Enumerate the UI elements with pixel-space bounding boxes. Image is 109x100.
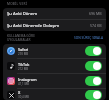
staticText: Şu Anki Dönemde Dolaşım xyxy=(7,23,90,29)
button[interactable]: X xyxy=(3,89,106,100)
staticText: X xyxy=(18,90,21,95)
staticText: 574 KB xyxy=(90,23,102,28)
staticText: 30,4 MB xyxy=(18,95,29,99)
button[interactable]: Toggle mobile data xyxy=(85,76,102,86)
button[interactable]: Instagram xyxy=(3,74,106,88)
button[interactable]: Toggle mobile data xyxy=(85,46,102,56)
staticText: Instagram xyxy=(18,77,37,82)
staticText: 696 MB xyxy=(89,11,102,16)
staticText: TikTok xyxy=(18,62,30,67)
staticText: 293 MB xyxy=(18,52,29,56)
button[interactable]: Şu Anki Dönem xyxy=(3,8,106,19)
staticText: Şu Anki Dönem xyxy=(7,11,89,17)
button[interactable]: SON SÜREÇ SIRALA xyxy=(73,36,103,40)
button[interactable]: Şu Anki Dönemde Dolaşım xyxy=(3,20,106,31)
staticText: 41,1 MB xyxy=(18,82,29,86)
staticText: SON SÜREÇ SIRALA xyxy=(73,36,103,40)
button[interactable]: Safari xyxy=(3,44,106,58)
staticText: MOBİL VERİ xyxy=(7,2,28,6)
staticText: 212 MB xyxy=(18,67,29,71)
staticText: KULLANIMA GÖRE xyxy=(7,34,35,38)
button[interactable]: Toggle mobile data xyxy=(85,61,102,71)
button[interactable]: Toggle mobile data xyxy=(85,90,102,100)
staticText: UYGULAMALAR xyxy=(7,38,31,42)
button[interactable]: TikTok xyxy=(3,59,106,73)
staticText: Safari xyxy=(18,47,29,52)
